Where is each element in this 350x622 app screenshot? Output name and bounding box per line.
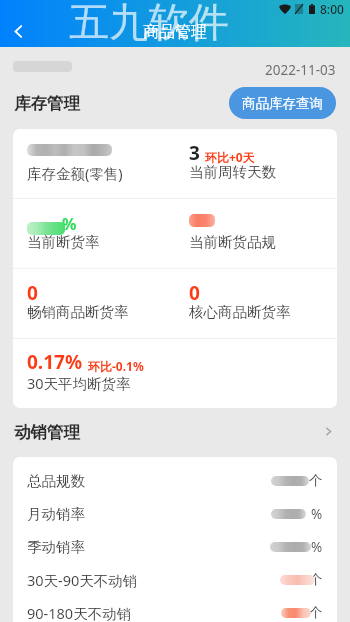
staticText: % — [62, 213, 77, 235]
staticText: 个 — [309, 472, 323, 489]
staticText: 8:00 — [320, 1, 344, 17]
staticText: 月动销率 — [27, 505, 85, 523]
staticText: 90-180天不动销 — [27, 603, 132, 622]
staticText: 环比-0.1% — [88, 358, 144, 374]
staticText: % — [311, 505, 323, 523]
staticText: 30天-90天不动销 — [27, 570, 138, 590]
staticText: 3 — [189, 140, 200, 166]
staticText: 当前周转天数 — [189, 163, 276, 181]
staticText: 核心商品断货率 — [189, 303, 291, 321]
staticText: 个 — [309, 571, 323, 588]
staticText: 0.17% — [27, 349, 83, 375]
button[interactable]: 总品规数 — [13, 464, 337, 497]
staticText: 2022-11-03 — [265, 61, 336, 79]
button[interactable]: Back — [5, 18, 31, 44]
staticText: % — [311, 538, 323, 556]
staticText: 0 — [27, 280, 38, 306]
button[interactable] — [0, 406, 350, 457]
staticText: 当前断货率 — [27, 233, 100, 251]
staticText: 环比+0天 — [205, 149, 255, 165]
staticText: 总品规数 — [27, 472, 85, 490]
button[interactable]: 90-180天不动销 — [13, 596, 337, 622]
staticText: 当前断货品规 — [189, 233, 276, 251]
staticText: 30天平均断货率 — [27, 373, 131, 393]
button[interactable]: 30天-90天不动销 — [13, 563, 337, 596]
staticText: 库存金额(零售) — [27, 163, 123, 183]
staticText: 0 — [189, 280, 200, 306]
staticText: 动销管理 — [14, 422, 80, 443]
staticText: 商品管理 — [143, 22, 207, 42]
staticText: 商品库存查询 — [242, 95, 323, 112]
staticText: 五九软件 — [69, 0, 229, 44]
staticText: 季动销率 — [27, 538, 85, 556]
button[interactable]: 月动销率 — [13, 497, 337, 530]
button[interactable]: 商品库存查询 — [229, 87, 336, 119]
staticText: 畅销商品断货率 — [27, 303, 129, 321]
button[interactable]: 季动销率 — [13, 530, 337, 563]
staticText: 库存管理 — [14, 93, 80, 114]
staticText: 个 — [309, 604, 323, 621]
